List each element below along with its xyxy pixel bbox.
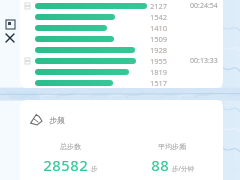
staticText: 步 — [91, 165, 98, 173]
staticText: 00:24:54 — [190, 1, 218, 11]
button[interactable]: 总步数 — [20, 142, 121, 175]
button[interactable]: 1509 — [20, 33, 223, 44]
button[interactable]: 平均步频 — [121, 142, 223, 175]
staticText: 2127 — [150, 1, 168, 11]
staticText: 1517 — [150, 78, 168, 88]
staticText: 1410 — [150, 23, 168, 33]
staticText: 步频 — [49, 115, 65, 125]
staticText: 总步数 — [60, 142, 81, 151]
button[interactable]: 1410 — [20, 22, 223, 33]
staticText: 1819 — [150, 67, 168, 77]
button[interactable]: Cadence — [28, 111, 67, 128]
button[interactable]: 1517 — [20, 77, 223, 88]
staticText: 平均步频 — [158, 142, 186, 151]
staticText: 步/分钟 — [172, 164, 194, 173]
other: Tools — [4, 18, 16, 44]
button[interactable]: 1955 — [20, 55, 223, 66]
staticText: 00:13:33 — [190, 56, 218, 66]
staticText: 1928 — [150, 45, 168, 55]
staticText: 1542 — [150, 12, 168, 22]
other: Cadence — [30, 113, 43, 126]
staticText: 28582 — [43, 155, 89, 175]
button[interactable]: 2127 — [20, 0, 223, 11]
button[interactable]: 1928 — [20, 44, 223, 55]
button[interactable]: 1819 — [20, 66, 223, 77]
button[interactable]: 1542 — [20, 11, 223, 22]
staticText: 1955 — [150, 56, 168, 66]
staticText: 1509 — [150, 34, 168, 44]
staticText: 88 — [151, 155, 170, 175]
